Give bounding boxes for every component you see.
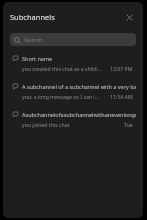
- staticText: Short name: [22, 55, 53, 62]
- button[interactable]: Short name: [3, 54, 143, 82]
- staticText: A subchannel of a subchannel with a very…: [22, 83, 136, 90]
- staticText: 12:07 PM: [110, 65, 133, 72]
- button[interactable]: Close: [121, 9, 138, 26]
- staticText: Tue: [124, 121, 133, 128]
- staticText: Asubchannelofasubchannelwithanevenlonger…: [22, 111, 136, 118]
- staticText: you joined this chat: [22, 121, 124, 128]
- staticText: you created this chat as a child...: [22, 65, 110, 72]
- button[interactable]: A subchannel of a subchannel with a very…: [3, 82, 143, 110]
- staticText: Subchannels: [10, 12, 55, 22]
- button[interactable]: Search: [10, 33, 136, 46]
- staticText: Search: [24, 36, 43, 44]
- staticText: 11:54 AM: [110, 93, 133, 100]
- staticText: you: a long message so I can i...: [22, 93, 110, 100]
- button[interactable]: Asubchannelofasubchannelwithanevenlonger…: [3, 110, 143, 138]
